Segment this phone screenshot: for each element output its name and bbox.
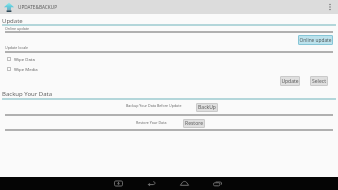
staticText: Wipe Media: [14, 66, 38, 72]
staticText: Backup Your Data Before Update: [126, 103, 182, 108]
button[interactable]: More options: [324, 1, 336, 13]
button[interactable]: Online update: [298, 35, 333, 45]
staticText: Online update: [5, 26, 30, 31]
staticText: Wipe Data: [14, 56, 35, 62]
staticText: Backup Your Data: [2, 90, 53, 98]
staticText: Online update: [299, 37, 332, 44]
staticText: Update locale: [5, 45, 29, 50]
button[interactable]: Update: [280, 76, 300, 86]
staticText: BackUp: [198, 104, 216, 111]
staticText: Update: [2, 17, 23, 25]
staticText: Restore Your Data: [136, 120, 167, 125]
button[interactable]: Restore: [183, 119, 205, 128]
staticText: Update: [281, 78, 299, 85]
button[interactable]: Back: [145, 177, 157, 190]
button[interactable]: Screenshot: [112, 177, 124, 190]
button[interactable]: Recent apps: [211, 177, 223, 190]
button[interactable]: Home: [178, 177, 190, 190]
staticText: UPDATE&BACKUP: [18, 4, 57, 10]
button[interactable]: Wipe Media: [7, 66, 38, 72]
button[interactable]: Select: [310, 76, 328, 86]
button[interactable]: Wipe Data: [7, 56, 35, 62]
staticText: Restore: [185, 120, 203, 127]
button[interactable]: BackUp: [196, 103, 218, 112]
staticText: Select: [312, 78, 326, 85]
